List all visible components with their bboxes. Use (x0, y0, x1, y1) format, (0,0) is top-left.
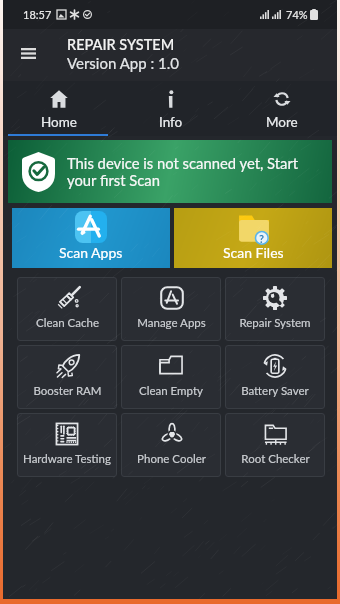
button[interactable]: Repair System (225, 277, 325, 341)
staticText: Clean Empty (139, 384, 203, 398)
button[interactable]: Phone Cooler (121, 413, 221, 477)
button[interactable]: ? (174, 208, 332, 268)
staticText: Manage Apps (137, 316, 206, 330)
staticText: 18:57 (23, 8, 52, 21)
staticText: Repair System (239, 316, 311, 330)
staticText: This device is not scanned yet, Start yo… (67, 154, 326, 189)
staticText: Hardware Testing (23, 452, 111, 466)
staticText: Scan Apps (59, 244, 123, 261)
staticText: Version App : 1.0 (67, 54, 179, 72)
button[interactable]: This device is not scanned yet, Start yo… (8, 140, 332, 203)
button[interactable]: Booster RAM (17, 345, 117, 409)
staticText: Home (41, 114, 77, 130)
button[interactable]: Home (3, 81, 115, 136)
staticText: Phone Cooler (137, 452, 206, 466)
staticText: Scan Files (223, 244, 284, 261)
staticText: More (266, 114, 298, 130)
button[interactable]: Info (115, 81, 226, 136)
button[interactable]: Battery Saver (225, 345, 325, 409)
button[interactable]: Clean Cache (17, 277, 117, 341)
button[interactable]: Clean Empty (121, 345, 221, 409)
button[interactable]: More (226, 81, 337, 136)
button[interactable]: Root Checker (225, 413, 325, 477)
staticText: Clean Cache (36, 316, 99, 330)
staticText: Info (159, 114, 183, 130)
staticText: 74% (286, 8, 308, 21)
button[interactable]: Manage Apps (121, 277, 221, 341)
button[interactable]: Open navigation menu (12, 37, 44, 69)
staticText: REPAIR SYSTEM (67, 36, 175, 53)
button[interactable]: Scan Apps (12, 208, 170, 268)
staticText: Battery Saver (241, 384, 309, 398)
staticText: ? (259, 232, 265, 245)
button[interactable]: Hardware Testing (17, 413, 117, 477)
staticText: Root Checker (241, 452, 310, 466)
staticText: Booster RAM (33, 384, 102, 398)
